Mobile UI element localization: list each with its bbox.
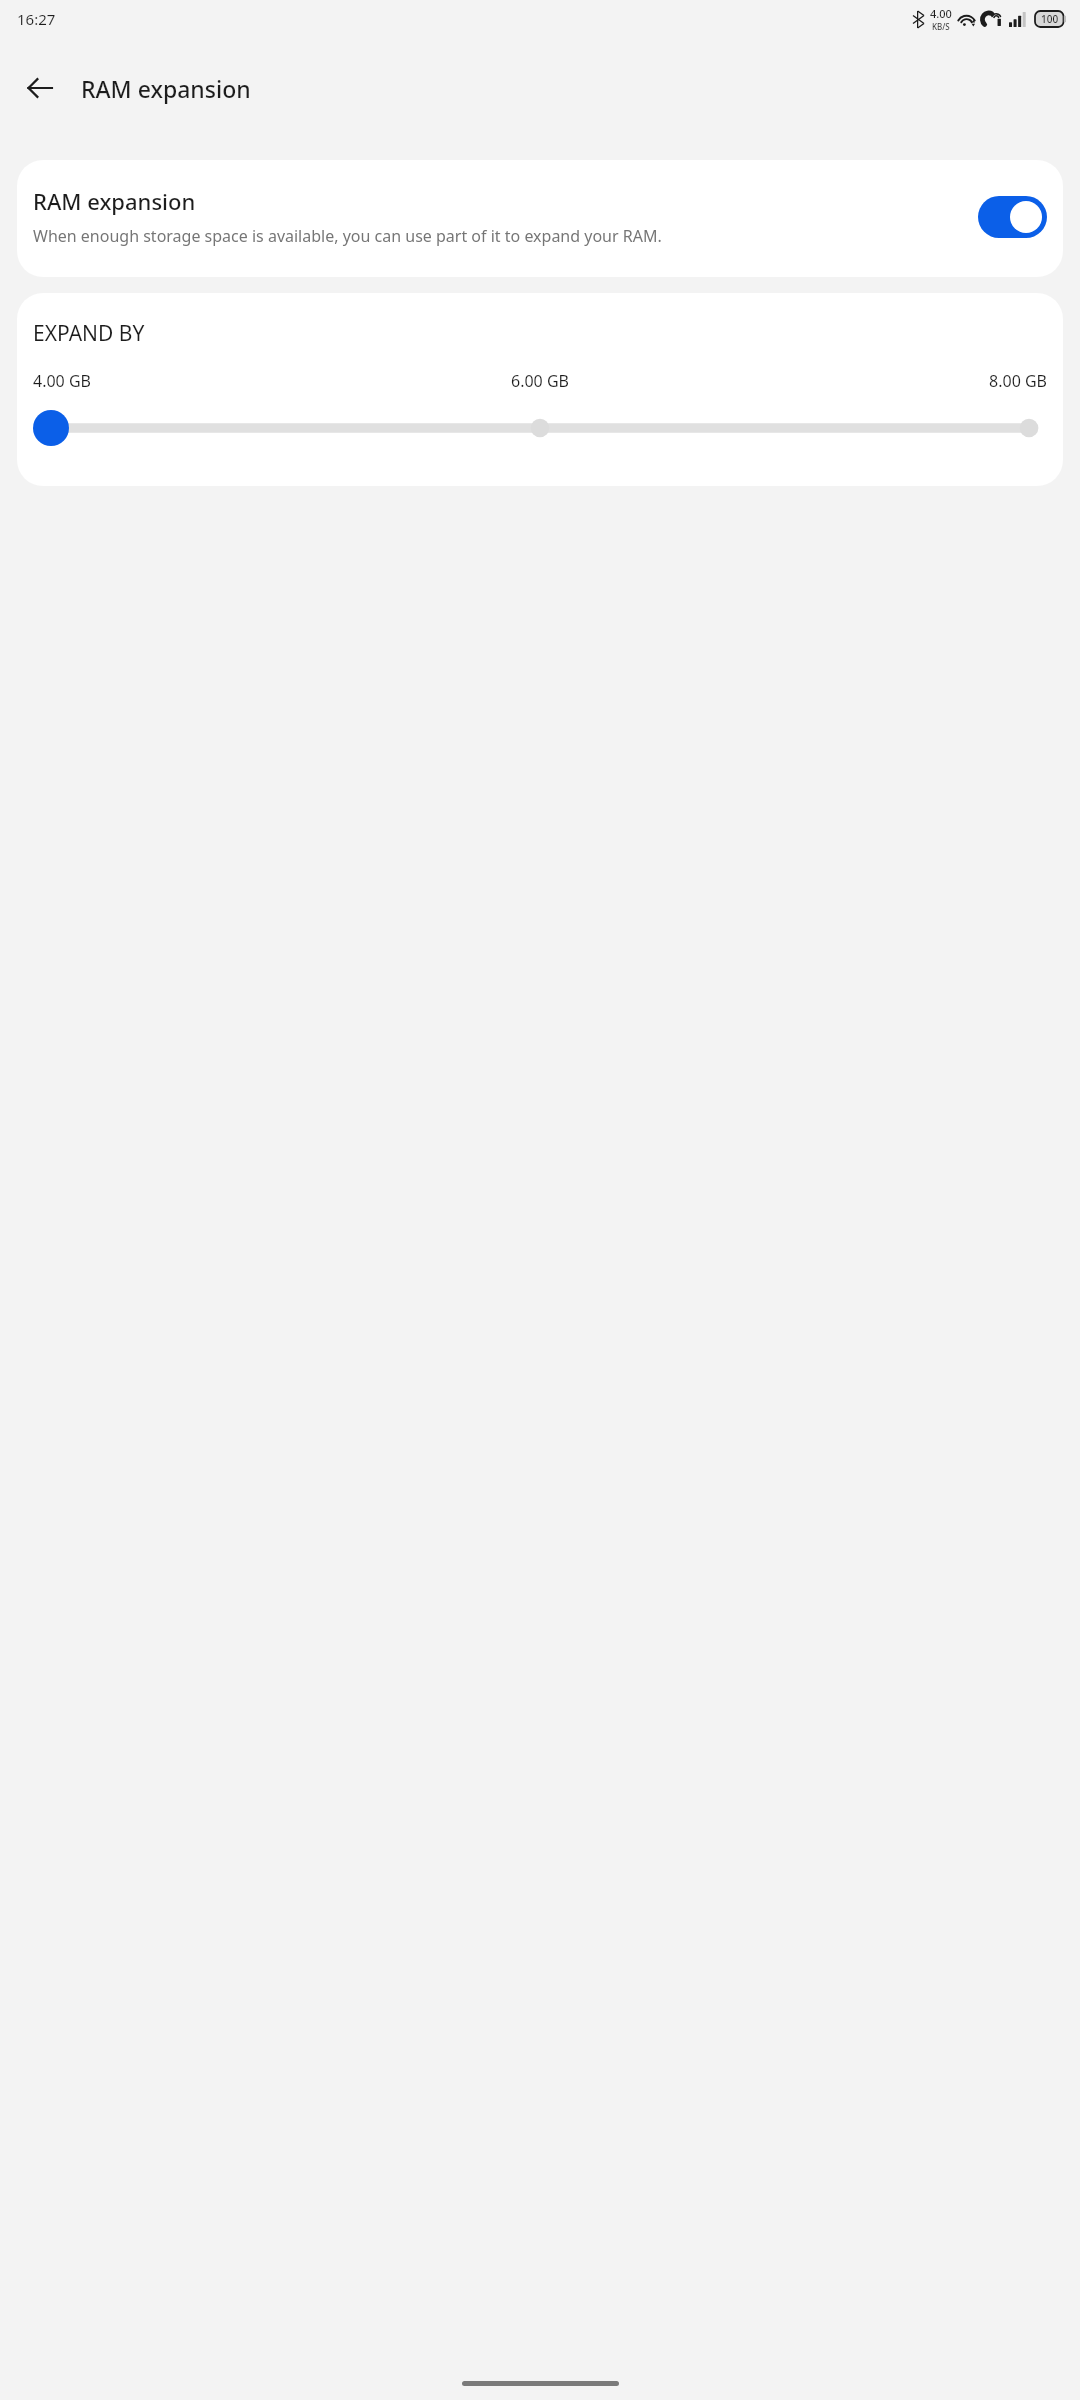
staticText: RAM expansion [33,186,196,216]
staticText: RAM expansion [81,73,251,104]
button[interactable]: RAM expansion toggle [978,196,1047,238]
button[interactable]: Expand by slider [33,410,1047,446]
staticText: 8.00 GB [709,370,1047,392]
staticText: When enough storage space is available, … [33,225,662,247]
staticText: 4.00 GB [33,370,371,392]
staticText: EXPAND BY [33,319,145,348]
button[interactable]: EXPAND BY [17,293,1063,486]
staticText: 4.00 [930,6,952,21]
staticText: KB/S [932,21,950,32]
button[interactable]: Back [12,60,68,116]
staticText: 100 [1041,12,1059,26]
button[interactable]: RAM expansion [17,160,1063,277]
staticText: 6.00 GB [371,370,709,392]
staticText: 16:27 [17,9,56,29]
